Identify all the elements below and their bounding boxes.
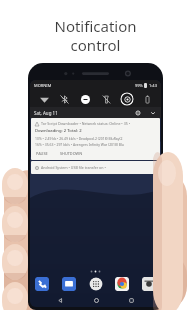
staticText: 1:43 <box>149 83 157 88</box>
button[interactable]: Expand <box>148 108 157 117</box>
button[interactable]: Back <box>54 294 66 306</box>
staticText: Tor Script Downloader • Network status: … <box>41 121 131 126</box>
staticText: Android System • USB file transfer on • <box>41 165 106 170</box>
button[interactable]: Settings <box>133 108 142 117</box>
staticText: 99% <box>135 83 143 88</box>
button[interactable]: Android System • USB file transfer on • <box>31 161 160 174</box>
button[interactable]: Phone <box>35 277 49 291</box>
button[interactable]: Battery saver <box>140 92 154 106</box>
button[interactable]: Auto rotate <box>120 92 134 106</box>
button[interactable]: Tor Script Downloader • Network status: … <box>31 118 160 160</box>
staticText: PAUSE <box>36 151 48 156</box>
button[interactable]: PAUSE <box>35 150 49 157</box>
button[interactable]: Flashlight <box>99 92 113 106</box>
button[interactable]: Camera <box>142 277 156 291</box>
button[interactable]: Apps <box>89 277 103 291</box>
button[interactable]: Messages <box>62 277 76 291</box>
staticText: Sat, Aug 11 <box>34 110 58 116</box>
staticText: Notification control <box>0 16 191 55</box>
button[interactable]: Bluetooth off <box>57 92 71 106</box>
staticText: Downloading: 2 Total: 2 <box>35 128 82 134</box>
staticText: SHUTDOWN <box>60 151 83 156</box>
button[interactable]: Recents <box>125 294 137 306</box>
staticText: 10% • 2.49 kb • 26.49 kb/s • Deadpool.2 … <box>35 136 123 141</box>
staticText: 16% • 35.63 • 297 kb/s • Avengers Infini… <box>35 142 124 147</box>
button[interactable]: Home <box>90 294 102 306</box>
button[interactable]: SHUTDOWN <box>59 150 84 157</box>
button[interactable]: Wi-Fi <box>37 92 51 106</box>
staticText: MORNIM <box>34 83 52 88</box>
button[interactable]: Do not disturb <box>78 92 92 106</box>
button[interactable]: Chrome <box>115 277 129 291</box>
